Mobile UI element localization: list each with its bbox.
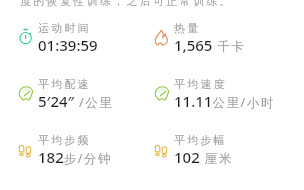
other: Calories bbox=[154, 29, 172, 47]
staticText: 运动时间 bbox=[38, 21, 91, 35]
button[interactable]: Steps bbox=[154, 130, 288, 174]
staticText: 01:39:59 bbox=[38, 35, 98, 55]
staticText: 5′24″ /公里 bbox=[38, 91, 114, 111]
button[interactable]: Speed bbox=[154, 74, 288, 118]
staticText: 182步/分钟 bbox=[38, 147, 113, 167]
staticText: 度的恢复性训练，之后可正常训练。 bbox=[20, 0, 233, 8]
other: Speed bbox=[154, 86, 172, 104]
staticText: 平均步频 bbox=[38, 133, 91, 147]
staticText: 平均速度 bbox=[174, 77, 227, 91]
button[interactable]: Speed bbox=[18, 74, 152, 118]
button[interactable]: Steps bbox=[18, 130, 152, 174]
staticText: 102 厘米 bbox=[174, 147, 233, 167]
other: Steps bbox=[18, 144, 36, 162]
staticText: 热量 bbox=[174, 21, 201, 35]
button[interactable]: Duration bbox=[18, 18, 152, 62]
staticText: 平均配速 bbox=[38, 77, 91, 91]
button[interactable]: Calories bbox=[154, 18, 288, 62]
staticText: 平均步幅 bbox=[174, 133, 227, 147]
other: Duration bbox=[18, 28, 36, 46]
other: Steps bbox=[154, 144, 172, 162]
staticText: 1,565 千卡 bbox=[174, 35, 246, 55]
staticText: 11.11公里/小时 bbox=[174, 91, 276, 111]
other: Speed bbox=[18, 86, 36, 104]
